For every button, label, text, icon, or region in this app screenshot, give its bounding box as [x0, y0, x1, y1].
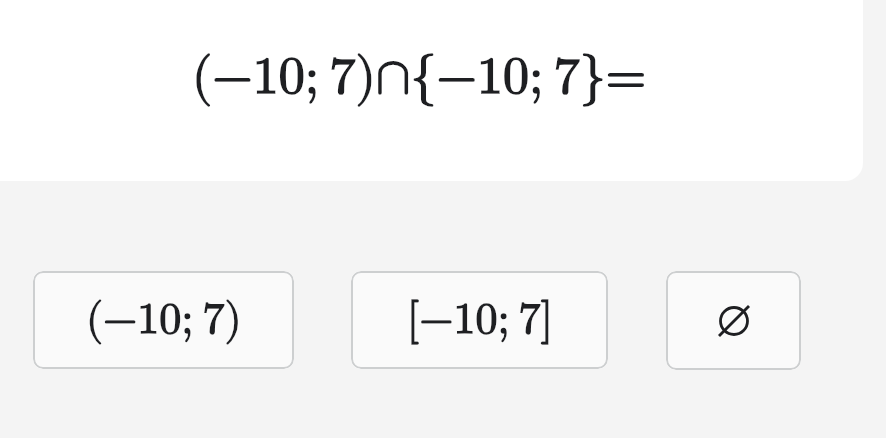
button[interactable]: (−10; 7) — [33, 271, 294, 369]
button[interactable] — [666, 271, 801, 370]
button[interactable]: [−10; 7] — [351, 271, 608, 369]
staticText: (−10; 7)∩{−10; 7}= — [192, 51, 647, 103]
staticText: [−10; 7] — [407, 298, 553, 342]
staticText: (−10; 7) — [86, 298, 242, 342]
